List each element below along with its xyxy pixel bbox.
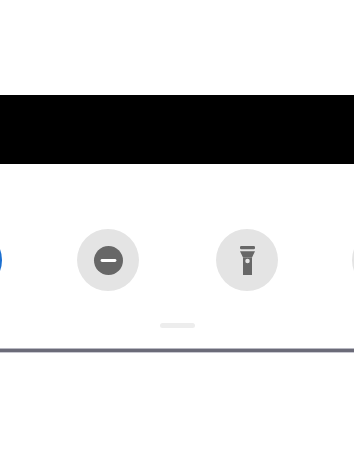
button[interactable]: Internet [0,229,2,291]
button[interactable]: Flashlight [216,229,278,291]
button[interactable]: Do Not Disturb [77,229,139,291]
button[interactable]: Quick setting [352,229,354,291]
